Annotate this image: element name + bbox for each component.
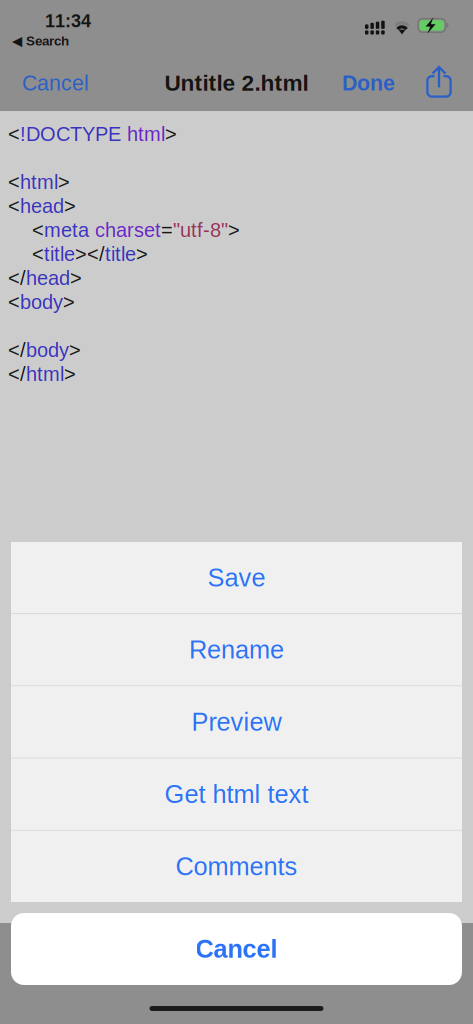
staticText: !DOCTYPE — [20, 123, 121, 145]
staticText: Get html text — [164, 780, 308, 808]
staticText: < — [8, 123, 20, 145]
staticText: html — [127, 123, 165, 145]
staticText: ></ — [75, 243, 105, 265]
staticText: Done — [342, 71, 395, 95]
staticText: html — [20, 171, 58, 193]
staticText: > — [58, 171, 70, 193]
staticText: > — [63, 291, 75, 313]
staticText: < — [8, 291, 20, 313]
staticText: ◀ Search — [12, 33, 69, 48]
button[interactable]: Done — [336, 61, 401, 105]
staticText: < — [8, 195, 20, 217]
staticText: html — [26, 363, 64, 385]
staticText: title — [44, 243, 75, 265]
button[interactable]: Cancel — [14, 61, 97, 105]
staticText: < — [8, 243, 44, 265]
staticText: > — [136, 243, 148, 265]
staticText: < — [8, 171, 20, 193]
button[interactable]: Cancel — [0, 913, 473, 985]
staticText: Rename — [189, 636, 284, 664]
staticText: > — [69, 339, 81, 361]
button[interactable]: Share — [401, 64, 456, 102]
staticText: > — [64, 363, 76, 385]
button[interactable]: Preview — [11, 686, 462, 758]
button[interactable]: Rename — [11, 614, 462, 685]
staticText: > — [64, 195, 76, 217]
staticText: charset — [95, 219, 161, 241]
staticText: body — [26, 339, 69, 361]
staticText: > — [165, 123, 177, 145]
staticText: Preview — [191, 708, 281, 736]
button[interactable]: Comments — [11, 831, 462, 902]
button[interactable]: Get html text — [11, 759, 462, 830]
staticText: </ — [8, 267, 26, 289]
staticText: Cancel — [195, 935, 277, 963]
staticText: > — [70, 267, 82, 289]
staticText: meta — [44, 219, 89, 241]
staticText: "utf-8" — [173, 219, 228, 241]
staticText: title — [105, 243, 136, 265]
staticText: </ — [8, 339, 26, 361]
staticText: Comments — [175, 852, 297, 880]
button[interactable]: Save — [11, 542, 462, 613]
staticText: Cancel — [22, 71, 89, 95]
staticText: </ — [8, 363, 26, 385]
staticText — [89, 219, 95, 241]
staticText: = — [161, 219, 173, 241]
staticText: > — [228, 219, 240, 241]
staticText: < — [8, 219, 44, 241]
staticText: 11:34 — [45, 11, 91, 31]
staticText: head — [20, 195, 64, 217]
staticText: body — [20, 291, 63, 313]
staticText: Save — [207, 563, 265, 592]
staticText: Untitle 2.html — [164, 70, 308, 96]
staticText: head — [26, 267, 70, 289]
